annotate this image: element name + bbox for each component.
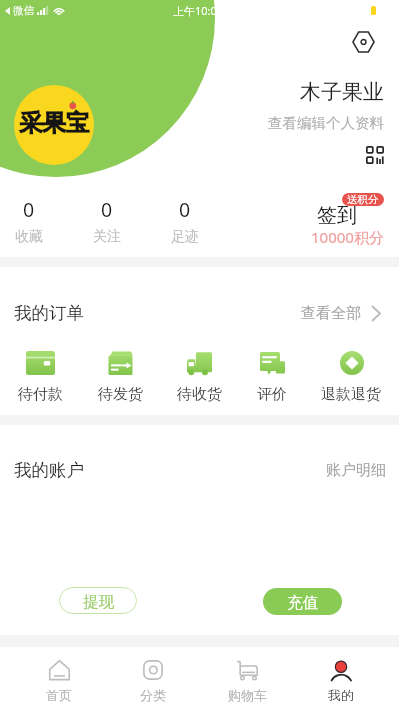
button[interactable]: 采果宝	[14, 85, 94, 165]
staticText: 签到	[317, 203, 357, 228]
staticText: 足迹	[171, 228, 199, 246]
staticText: 购物车	[228, 687, 267, 703]
button[interactable]: 分类	[106, 649, 200, 709]
button[interactable]: Settings	[352, 31, 375, 53]
staticText: 送积分	[347, 193, 379, 206]
button[interactable]: 签到	[250, 190, 384, 248]
staticText: 我的订单	[14, 302, 84, 324]
button[interactable]: 提现	[59, 587, 137, 614]
button[interactable]: 0	[146, 196, 224, 248]
staticText: 退款退货	[321, 385, 381, 404]
staticText: 待发货	[98, 385, 143, 404]
staticText: 待收货	[177, 385, 222, 404]
button[interactable]: 待发货	[98, 350, 143, 404]
button[interactable]: 待付款	[18, 350, 63, 404]
staticText: 微信	[13, 4, 34, 17]
button[interactable]: 查看全部	[301, 304, 381, 323]
button[interactable]: 充值	[263, 588, 342, 615]
staticText: 10000积分	[311, 227, 384, 247]
button[interactable]: 我的	[294, 649, 388, 709]
button[interactable]: Scan QR code	[366, 146, 384, 164]
button[interactable]: 0	[68, 196, 146, 248]
staticText: 0	[23, 196, 35, 223]
staticText: 评价	[257, 385, 287, 404]
staticText: 上午10:05	[173, 3, 224, 18]
staticText: 待付款	[18, 385, 63, 404]
staticText: 账户明细	[326, 461, 386, 480]
staticText: 关注	[93, 228, 121, 246]
staticText: 我的	[328, 687, 354, 703]
staticText: 查看全部	[301, 304, 361, 323]
staticText: 充值	[287, 593, 318, 613]
button[interactable]: 待收货	[177, 350, 222, 404]
staticText: 首页	[46, 687, 72, 703]
button[interactable]: 购物车	[200, 649, 294, 709]
staticText: 木子果业	[300, 79, 384, 105]
staticText: 分类	[140, 687, 166, 703]
button[interactable]: 0	[0, 196, 68, 248]
staticText: 提现	[83, 592, 114, 612]
button[interactable]: 账户明细	[326, 461, 386, 480]
staticText: 收藏	[15, 228, 43, 246]
staticText: 采果宝	[19, 108, 90, 138]
staticText: 我的账户	[14, 459, 84, 481]
button[interactable]: 查看编辑个人资料	[268, 114, 384, 132]
button[interactable]: 首页	[11, 649, 106, 709]
staticText: 0	[101, 196, 113, 223]
button[interactable]: 退款退货	[321, 350, 381, 404]
staticText: 0	[179, 196, 191, 223]
button[interactable]: 评价	[257, 350, 287, 404]
